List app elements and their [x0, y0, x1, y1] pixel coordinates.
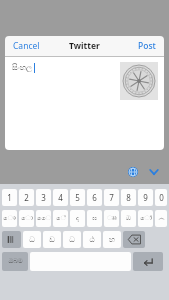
staticText: ඹ [126, 215, 131, 222]
button[interactable]: ඔබම [2, 252, 28, 271]
staticText: ෝ [140, 215, 152, 222]
staticText: 6 [92, 192, 97, 203]
staticText: ඩ [49, 236, 55, 244]
staticText: ඔබම [8, 258, 23, 265]
button[interactable]: Hide keyboard [147, 165, 161, 179]
staticText: 0 [159, 192, 164, 203]
button[interactable]: හ [103, 231, 121, 248]
staticText: 4 [58, 192, 63, 203]
staticText: සිංහල [12, 64, 33, 72]
staticText: ඝ [92, 215, 97, 222]
button[interactable]: 6 [87, 189, 102, 206]
button[interactable]: ෴ [155, 210, 167, 227]
staticText: ෙෙ [37, 215, 51, 222]
button[interactable]: Post [136, 38, 158, 54]
button[interactable]: ඩ [43, 231, 61, 248]
staticText: ේ [56, 215, 66, 222]
button[interactable]: ෝ [138, 210, 153, 227]
staticText: ො [21, 215, 33, 222]
staticText: හ [109, 236, 115, 244]
button[interactable]: Change language [126, 165, 140, 179]
button[interactable]: 7 [104, 189, 119, 206]
button[interactable]: ද [70, 210, 85, 227]
button[interactable]: 1 [2, 189, 17, 206]
staticText: ඨ [89, 236, 95, 244]
staticText: 7 [109, 192, 114, 203]
button[interactable] [133, 252, 163, 271]
button[interactable]: 9 [138, 189, 153, 206]
staticText: Twitter [69, 40, 100, 52]
button[interactable]: ෞ [2, 210, 17, 227]
staticText: 1 [7, 192, 12, 203]
button[interactable]: 0 [155, 189, 167, 206]
button[interactable]: ධ [63, 231, 81, 248]
staticText: ධ [29, 236, 35, 244]
staticText: 3 [41, 192, 46, 203]
staticText: ෞ [3, 215, 16, 222]
button[interactable]: ඝ [87, 210, 102, 227]
staticText: Cancel [13, 40, 40, 52]
staticText: ෲ [107, 215, 117, 222]
button[interactable]: ො [19, 210, 34, 227]
button[interactable]: 8 [121, 189, 136, 206]
button[interactable]: 5 [70, 189, 85, 206]
button[interactable]: ේ [53, 210, 68, 227]
button[interactable]: ෙෙ [36, 210, 51, 227]
button[interactable]: 4 [53, 189, 68, 206]
button[interactable]: ඨ [83, 231, 101, 248]
staticText: ද [76, 215, 79, 222]
staticText: Post [138, 40, 156, 52]
button[interactable]: සිංහල [5, 57, 164, 150]
button[interactable]: ඹ [121, 210, 136, 227]
staticText: ෴ [158, 215, 165, 222]
button[interactable]: 2 [19, 189, 34, 206]
button[interactable]: Attached image [120, 62, 158, 100]
button[interactable]: 3 [36, 189, 51, 206]
button[interactable]: ධ [23, 231, 41, 248]
staticText: 9 [143, 192, 148, 203]
button[interactable]: ෲ [104, 210, 119, 227]
button[interactable] [123, 231, 145, 248]
staticText: 8 [126, 192, 131, 203]
staticText: 2 [24, 192, 29, 203]
staticText: 5 [75, 192, 80, 203]
staticText: ධ [69, 236, 75, 244]
button[interactable]: Cancel [11, 38, 42, 54]
button[interactable] [2, 231, 21, 248]
